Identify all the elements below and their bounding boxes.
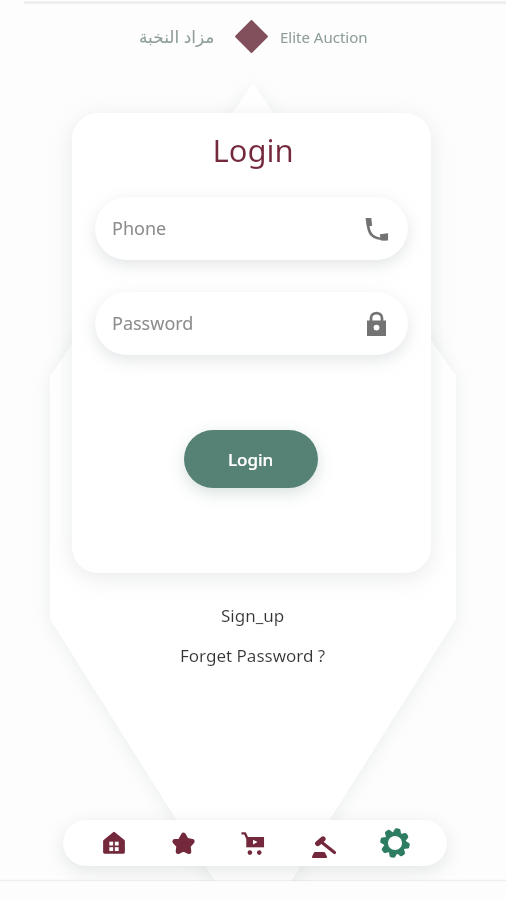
button[interactable]: Forget Password ? — [170, 640, 336, 671]
staticText: Password — [112, 311, 194, 336]
button[interactable]: Login — [184, 430, 318, 488]
staticText: Forget Password ? — [180, 644, 326, 667]
button[interactable]: Auctions — [301, 823, 347, 869]
staticText: Login — [228, 448, 274, 471]
button[interactable]: Settings — [372, 820, 418, 866]
button[interactable]: Password — [95, 292, 408, 355]
button[interactable]: Sign_up — [211, 600, 295, 631]
staticText: مزاد النخبة — [139, 25, 215, 48]
staticText: Login — [0, 129, 506, 171]
staticText: Sign_up — [221, 604, 285, 627]
button[interactable]: Home — [91, 820, 137, 866]
button[interactable]: Phone — [95, 197, 408, 260]
staticText: Elite Auction — [280, 27, 368, 47]
staticText: Phone — [112, 216, 167, 241]
button[interactable]: Cart — [230, 820, 276, 866]
button[interactable]: Favourites — [160, 820, 206, 866]
